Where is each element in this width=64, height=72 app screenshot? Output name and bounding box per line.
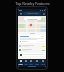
- button[interactable]: Menu: [19, 12, 22, 15]
- button[interactable]: Profile: [42, 12, 45, 15]
- staticText: Home: [18, 63, 23, 65]
- staticText: Current area: [27, 18, 38, 20]
- staticText: Save: [29, 63, 33, 65]
- staticText: More: [41, 63, 45, 65]
- staticText: Search here: [27, 12, 38, 15]
- staticText: Top Nearby Features: [15, 1, 50, 6]
- button[interactable]: Trips: [34, 59, 40, 65]
- button[interactable]: Current area: [24, 17, 41, 20]
- staticText: Trips: [35, 63, 39, 65]
- button[interactable]: [19, 53, 45, 56]
- button[interactable]: More: [40, 59, 46, 65]
- staticText: Near: [24, 63, 28, 65]
- button[interactable]: Search here: [23, 12, 41, 15]
- button[interactable]: [18, 44, 46, 48]
- button[interactable]: Menu: [18, 11, 46, 16]
- button[interactable]: Save: [28, 59, 34, 65]
- button[interactable]: Home: [18, 59, 23, 65]
- button[interactable]: [19, 35, 45, 43]
- button[interactable]: [18, 48, 46, 52]
- button[interactable]: Near: [23, 59, 28, 65]
